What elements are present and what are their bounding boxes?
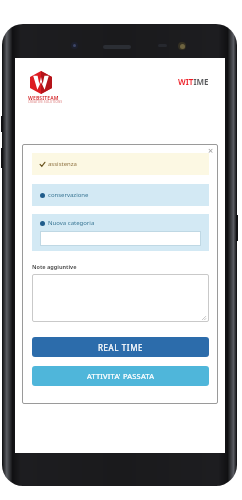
staticText: Nuova categoria <box>48 219 95 227</box>
staticText: × <box>208 144 214 156</box>
button[interactable]: REAL TIME <box>32 337 209 357</box>
button[interactable]: Close <box>205 144 217 156</box>
staticText: assistenza <box>48 160 77 168</box>
staticText: ATTIVITA' PASSATA <box>87 371 155 381</box>
button[interactable]: ATTIVITA' PASSATA <box>32 366 209 386</box>
staticText: REAL TIME <box>98 342 144 353</box>
staticText: Note aggiuntive <box>32 263 77 270</box>
staticText: WEBSITEAM <box>28 95 59 102</box>
button[interactable] <box>40 231 201 246</box>
button[interactable]: conservazione <box>32 184 209 206</box>
staticText: WITIME <box>178 76 209 87</box>
staticText: CREATIVE SOLUTIONS <box>28 100 63 104</box>
staticText: conservazione <box>48 191 89 199</box>
button[interactable]: assistenza <box>32 153 209 175</box>
button[interactable] <box>32 274 209 322</box>
